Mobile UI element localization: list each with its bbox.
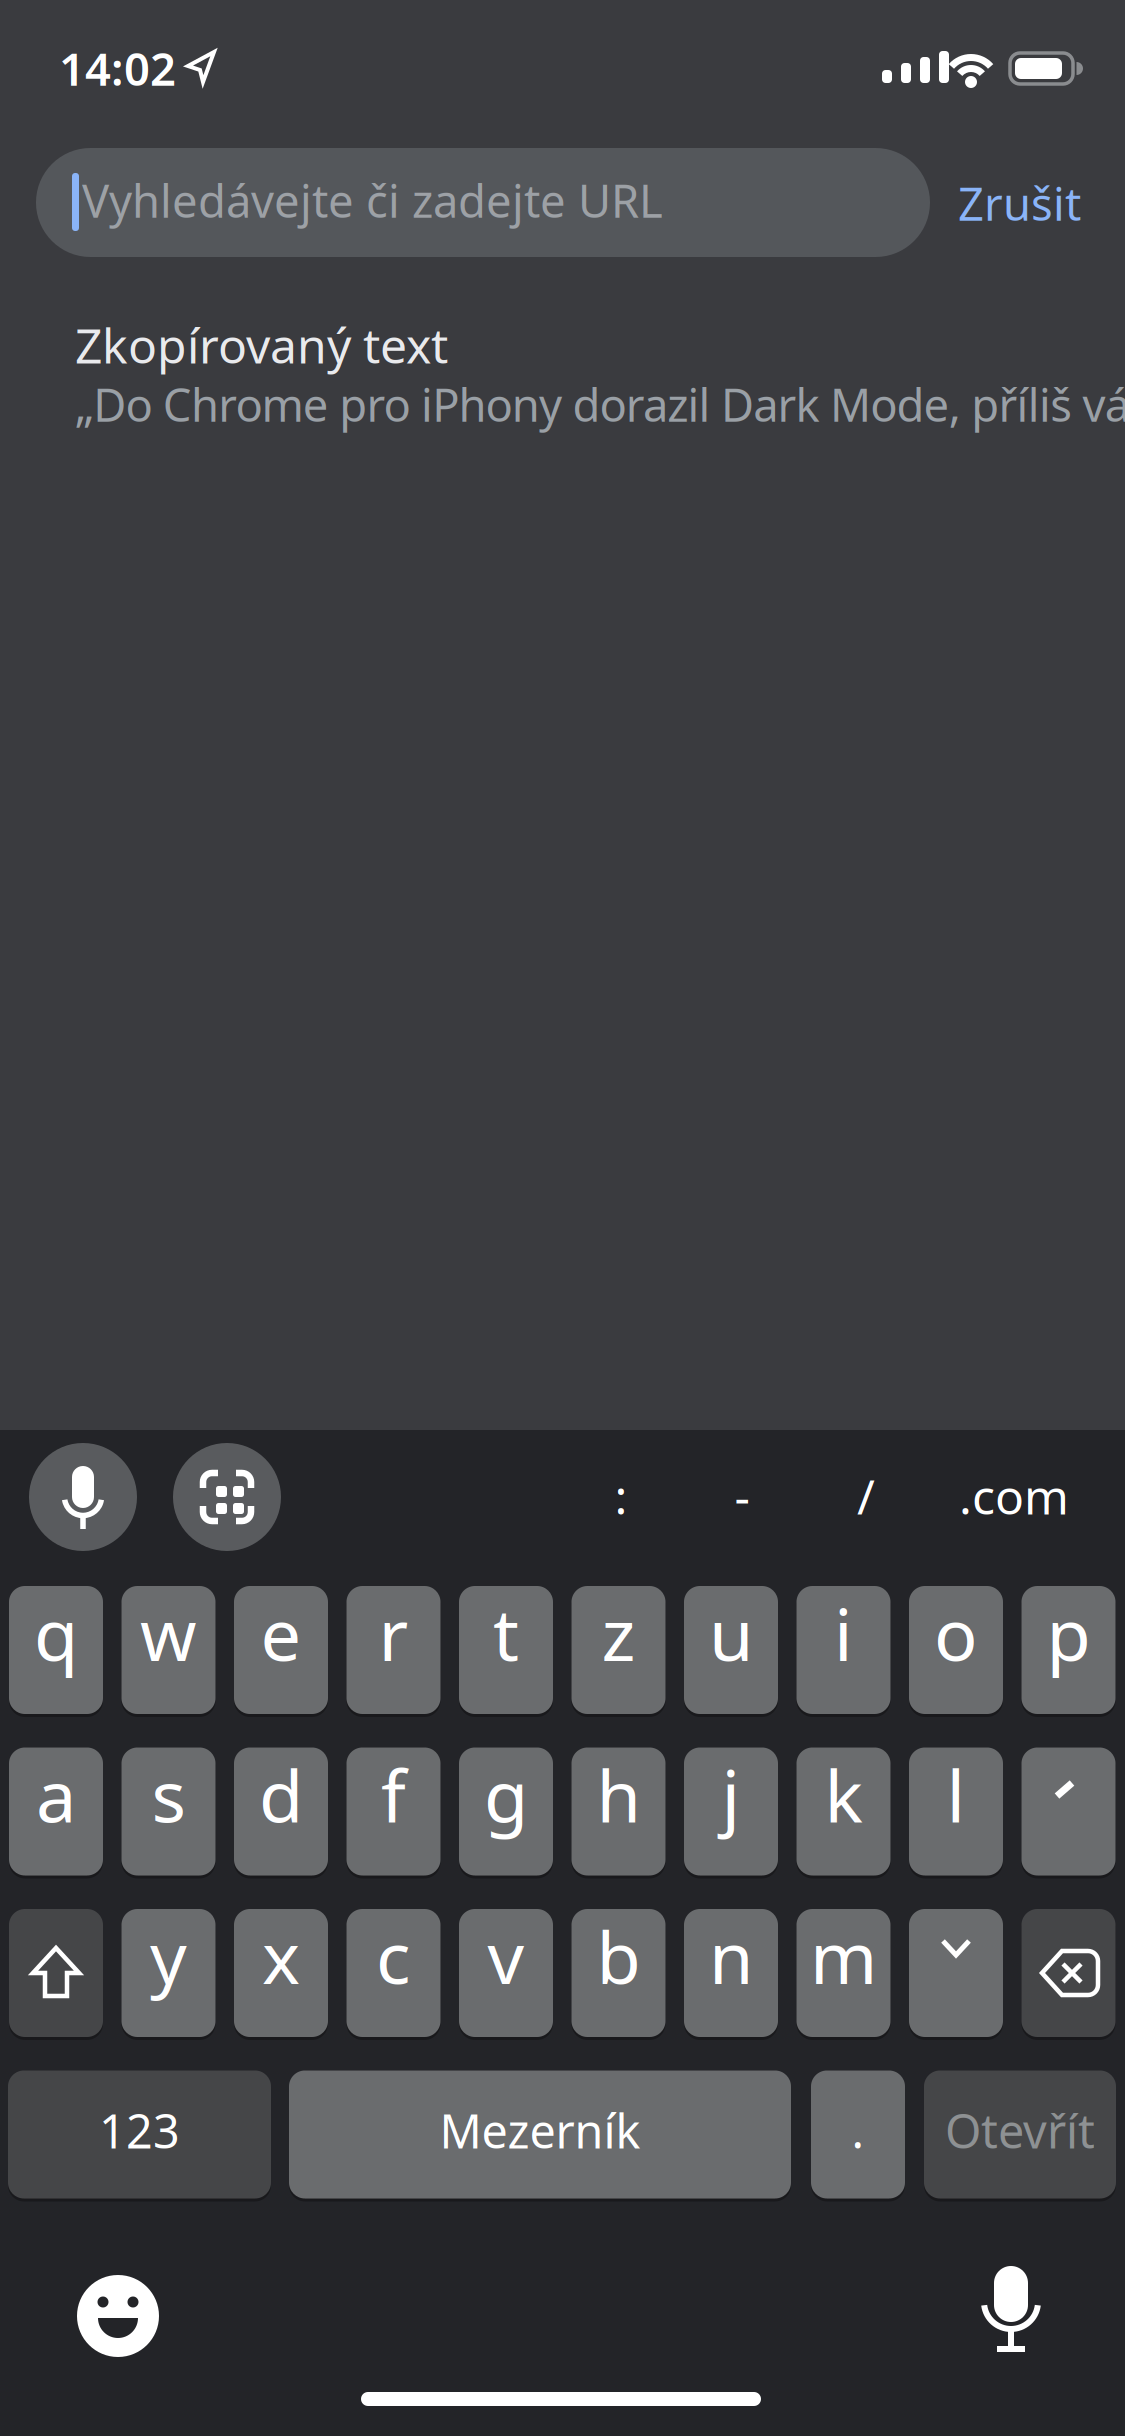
button[interactable]: m xyxy=(796,1909,890,2037)
staticText: h xyxy=(596,1747,640,1842)
staticText: m xyxy=(810,1908,877,2004)
button[interactable]: x xyxy=(234,1909,328,2037)
button[interactable]: Mezerník xyxy=(289,2070,791,2198)
button[interactable] xyxy=(909,1909,1003,2037)
staticText: Vyhledávejte či zadejte URL xyxy=(82,170,663,230)
button[interactable] xyxy=(0,0,1125,2436)
staticText: Mezerník xyxy=(439,2099,640,2161)
staticText: .com xyxy=(959,1464,1069,1528)
button[interactable]: r xyxy=(346,1586,440,1714)
staticText: e xyxy=(260,1585,301,1681)
staticText: : xyxy=(614,1464,627,1528)
button[interactable]: k xyxy=(796,1747,890,1875)
staticText: w xyxy=(140,1585,197,1681)
button[interactable]: . xyxy=(811,2070,905,2198)
button[interactable]: z xyxy=(571,1586,665,1714)
button[interactable]: Zrušit xyxy=(958,173,1081,233)
button[interactable]: Vyhledávejte či zadejte URL xyxy=(36,148,930,257)
staticText: z xyxy=(601,1585,635,1681)
button[interactable]: b xyxy=(571,1909,665,2037)
button[interactable]: 123 xyxy=(8,2070,271,2198)
staticText: c xyxy=(376,1908,411,2004)
staticText: Zkopírovaný text xyxy=(75,313,448,377)
staticText: g xyxy=(484,1747,528,1842)
button[interactable]: w xyxy=(121,1586,215,1714)
staticText: b xyxy=(596,1908,640,2004)
button[interactable]: y xyxy=(121,1909,215,2037)
button[interactable]: q xyxy=(9,1586,103,1714)
button[interactable]: Zkopírovaný text xyxy=(75,313,1125,377)
button[interactable]: v xyxy=(459,1909,553,2037)
button[interactable] xyxy=(9,1909,103,2037)
staticText: y xyxy=(150,1908,187,2004)
button[interactable] xyxy=(0,0,1125,2436)
staticText: o xyxy=(934,1585,978,1681)
staticText: 14:02 xyxy=(59,38,176,98)
staticText: x xyxy=(262,1908,300,2004)
button[interactable]: .com xyxy=(959,1464,1069,1528)
button[interactable]: t xyxy=(459,1586,553,1714)
button[interactable]: p xyxy=(1021,1586,1115,1714)
button[interactable] xyxy=(0,0,1125,2436)
button[interactable]: / xyxy=(857,1464,875,1528)
staticText: j xyxy=(721,1747,740,1842)
button[interactable]: a xyxy=(9,1747,103,1875)
button[interactable]: c xyxy=(346,1909,440,2037)
button[interactable]: e xyxy=(234,1586,328,1714)
staticText: Zrušit xyxy=(958,173,1081,233)
button[interactable] xyxy=(1021,1909,1115,2037)
button[interactable]: o xyxy=(909,1586,1003,1714)
button[interactable]: : xyxy=(614,1464,627,1528)
staticText: q xyxy=(34,1585,78,1681)
staticText: n xyxy=(709,1908,753,2004)
button[interactable]: g xyxy=(459,1747,553,1875)
staticText: d xyxy=(259,1747,303,1842)
button[interactable]: s xyxy=(121,1747,215,1875)
button[interactable]: u xyxy=(684,1586,778,1714)
button[interactable]: f xyxy=(346,1747,440,1875)
staticText: . xyxy=(851,2099,864,2161)
button[interactable] xyxy=(0,0,1125,2436)
button[interactable]: n xyxy=(684,1909,778,2037)
button[interactable] xyxy=(1021,1747,1115,1875)
staticText: Otevřít xyxy=(945,2099,1095,2161)
staticText: / xyxy=(857,1464,875,1528)
button[interactable]: j xyxy=(684,1747,778,1875)
staticText: u xyxy=(709,1585,753,1681)
staticText: - xyxy=(734,1464,749,1528)
button[interactable]: i xyxy=(796,1586,890,1714)
staticText: t xyxy=(493,1585,519,1681)
staticText: i xyxy=(834,1585,853,1681)
button[interactable]: Otevřít xyxy=(924,2070,1116,2198)
staticText: 123 xyxy=(99,2099,180,2161)
button[interactable]: - xyxy=(734,1464,749,1528)
staticText: f xyxy=(381,1747,406,1842)
staticText: k xyxy=(824,1747,862,1842)
staticText: l xyxy=(946,1747,965,1842)
staticText: p xyxy=(1046,1585,1090,1681)
staticText: s xyxy=(151,1747,185,1842)
staticText: a xyxy=(36,1747,76,1842)
button[interactable]: l xyxy=(909,1747,1003,1875)
staticText: r xyxy=(378,1585,408,1681)
staticText: „Do Chrome pro iPhony dorazil Dark Mode,… xyxy=(75,374,1125,434)
button[interactable]: h xyxy=(571,1747,665,1875)
staticText: v xyxy=(487,1908,524,2004)
button[interactable]: d xyxy=(234,1747,328,1875)
